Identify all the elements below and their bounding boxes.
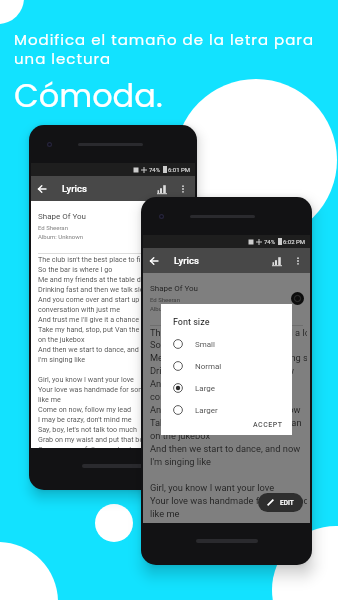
button[interactable]: Large bbox=[173, 377, 292, 399]
button[interactable]: Font size bbox=[151, 178, 173, 200]
button[interactable]: EDIT bbox=[258, 493, 303, 512]
staticText: Modifica el tamaño de la letra para una … bbox=[14, 29, 338, 69]
staticText: Cómoda. bbox=[14, 73, 163, 118]
staticText: Large bbox=[195, 384, 216, 393]
staticText: 6:02 PM bbox=[283, 238, 306, 245]
button[interactable]: ACCEPT bbox=[249, 417, 287, 433]
staticText: EDIT bbox=[280, 499, 294, 507]
staticText: The club isn't the best place to find a … bbox=[150, 327, 307, 523]
button[interactable]: Normal bbox=[173, 355, 292, 377]
staticText: Small bbox=[195, 340, 216, 349]
staticText: Normal bbox=[195, 362, 222, 371]
button[interactable]: More options bbox=[288, 251, 308, 271]
button[interactable]: Larger bbox=[173, 399, 292, 421]
staticText: 74% bbox=[264, 238, 276, 245]
button[interactable]: Back bbox=[31, 178, 53, 200]
staticText: Album: Unknown bbox=[150, 305, 196, 312]
staticText: Ed Sheeran bbox=[150, 296, 180, 303]
staticText: Larger bbox=[195, 406, 218, 415]
staticText: ACCEPT bbox=[253, 421, 283, 429]
staticText: The club isn't the best place to find a … bbox=[38, 255, 175, 448]
staticText: Album: Unknown bbox=[38, 233, 84, 240]
button[interactable]: Font size bbox=[266, 250, 288, 272]
button[interactable]: More options bbox=[173, 179, 193, 199]
button[interactable]: Album art bbox=[291, 292, 304, 305]
button[interactable]: EDIT bbox=[143, 418, 188, 437]
staticText: Lyrics bbox=[174, 255, 199, 266]
staticText: Font size bbox=[173, 317, 210, 328]
staticText: 74% bbox=[149, 166, 161, 173]
staticText: Ed Sheeran bbox=[38, 224, 68, 231]
button[interactable]: Small bbox=[173, 333, 292, 355]
staticText: 6:01 PM bbox=[168, 166, 191, 173]
staticText: Lyrics bbox=[62, 183, 87, 194]
staticText: Shape Of You bbox=[38, 212, 87, 221]
button[interactable]: Back bbox=[143, 250, 165, 272]
staticText: Shape Of You bbox=[150, 284, 199, 293]
